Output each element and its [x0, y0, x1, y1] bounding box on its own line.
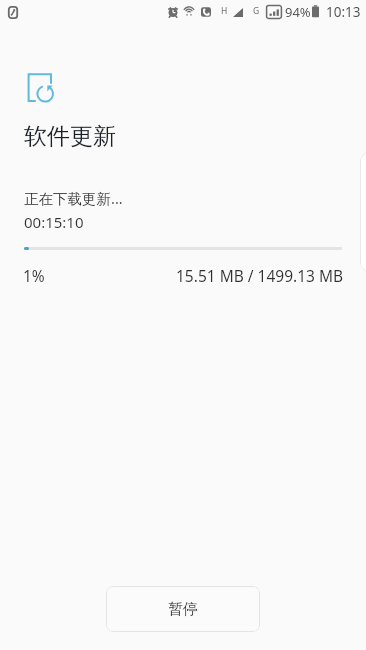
button[interactable]: Next update card: [360, 152, 366, 272]
staticText: 94%: [285, 3, 311, 21]
staticText: 1%: [23, 265, 45, 286]
staticText: G: [253, 5, 260, 17]
staticText: 正在下载更新...: [24, 188, 123, 208]
staticText: 暂停: [168, 600, 198, 619]
staticText: 10:13: [326, 3, 361, 21]
staticText: 软件更新: [24, 122, 116, 151]
button[interactable]: 暂停: [106, 586, 260, 632]
other: Software update: [27, 72, 57, 106]
staticText: 15.51 MB / 1499.13 MB: [176, 265, 344, 286]
staticText: H: [221, 5, 228, 17]
staticText: 00:15:10: [24, 212, 84, 232]
